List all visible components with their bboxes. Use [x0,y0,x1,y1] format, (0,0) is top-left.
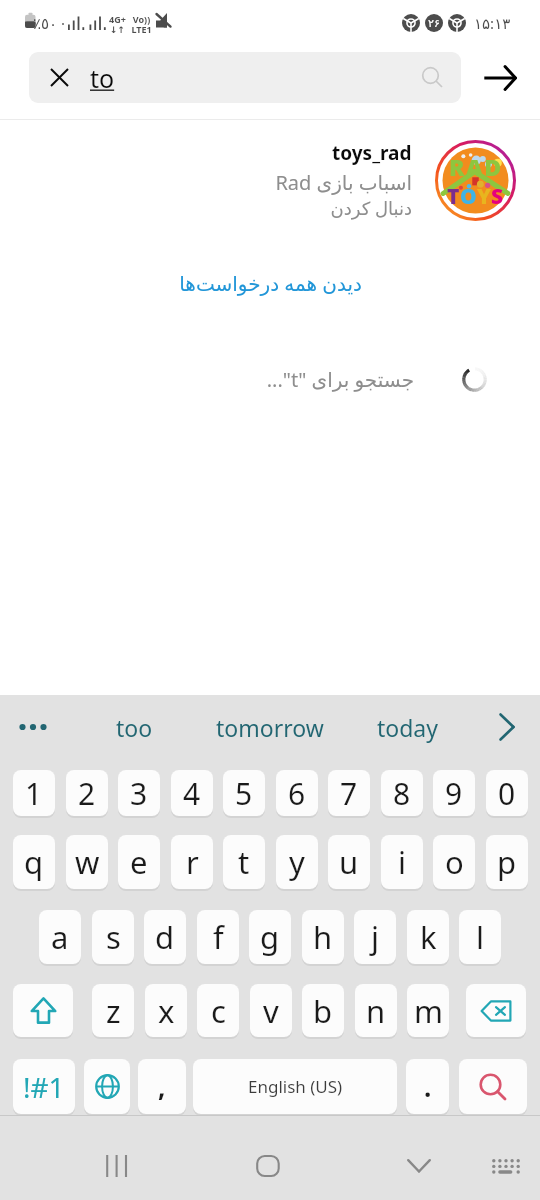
staticText: m [414,990,443,1032]
button[interactable]: Search [459,1059,527,1114]
staticText: Vo)) LTE1 [131,13,152,35]
button[interactable]: l [459,910,501,964]
staticText: 8 [393,773,411,814]
button[interactable]: q [13,835,55,889]
button[interactable]: d [144,910,186,964]
staticText: 1 [25,773,43,814]
button[interactable]: v [250,984,292,1037]
button[interactable]: p [486,835,528,889]
button[interactable]: More [484,703,530,751]
staticText: 3 [130,773,148,814]
staticText: y [289,841,305,883]
button[interactable]: o [433,835,475,889]
staticText: ۱۵:۱۳ [474,13,511,33]
staticText: RAD [449,151,503,182]
button[interactable]: a [39,910,81,964]
button[interactable]: g [249,910,291,964]
staticText: q [24,841,44,883]
button[interactable]: x [145,984,187,1037]
button[interactable]: y [276,835,318,889]
button[interactable]: too [74,703,194,751]
button[interactable]: h [302,910,344,964]
button[interactable]: u [328,835,370,889]
button[interactable]: f [197,910,239,964]
button[interactable]: e [118,835,160,889]
button[interactable]: Submit search [473,52,527,103]
staticText: w [75,841,100,883]
button[interactable]: Backspace [466,984,526,1037]
staticText: ٪٥٠ · [33,13,66,33]
staticText: 2 [78,773,96,814]
button[interactable]: toys_rad [0,138,540,222]
button[interactable]: Change language [84,1059,130,1114]
staticText: toys_rad [332,140,412,166]
button[interactable]: English (US) [193,1059,397,1114]
staticText: O [460,182,477,211]
staticText: f [213,916,224,958]
button[interactable]: k [407,910,449,964]
staticText: too [116,712,153,743]
button[interactable]: !#1 [13,1059,75,1114]
button[interactable]: 4 [171,770,213,816]
button[interactable]: 5 [223,770,265,816]
button[interactable]: 9 [433,770,475,816]
button[interactable]: j [354,910,396,964]
staticText: x [158,990,175,1032]
staticText: t [238,841,250,883]
button[interactable]: Clear [29,52,461,103]
staticText: i [398,841,406,883]
button[interactable]: 8 [381,770,423,816]
button[interactable]: 7 [328,770,370,816]
button[interactable]: Home [236,1134,300,1198]
staticText: 4 [183,773,201,814]
button[interactable]: today [347,703,467,751]
staticText: n [366,990,386,1032]
button[interactable]: tomorrow [210,703,330,751]
button[interactable]: t [223,835,265,889]
staticText: b [313,990,333,1032]
staticText: h [313,916,333,958]
staticText: 0 [498,773,516,814]
staticText: . [424,1069,432,1104]
button[interactable]: 6 [276,770,318,816]
button[interactable]: More suggestions [10,703,56,751]
staticText: e [130,841,148,883]
button[interactable]: w [66,835,108,889]
button[interactable]: دیدن همه درخواست‌ها [0,258,540,308]
button[interactable]: b [302,984,344,1037]
staticText: جستجو برای "t"... [266,366,414,393]
staticText: v [263,990,279,1032]
staticText: اسباب بازی Rad [275,169,412,196]
button[interactable]: Recents [85,1134,149,1198]
staticText: , [158,1069,166,1104]
button[interactable]: s [92,910,134,964]
button[interactable]: , [138,1059,186,1114]
button[interactable]: i [381,835,423,889]
staticText: !#1 [23,1068,65,1106]
button[interactable]: 0 [486,770,528,816]
staticText: z [106,990,121,1032]
button[interactable]: Shift [13,984,73,1037]
button[interactable]: 3 [118,770,160,816]
staticText: s [106,916,121,958]
button[interactable]: c [197,984,239,1037]
staticText: to [90,61,115,95]
button[interactable]: 1 [13,770,55,816]
staticText: o [445,841,464,883]
button[interactable]: Hide keyboard [387,1134,451,1198]
staticText: today [377,712,438,743]
button[interactable]: z [92,984,134,1037]
staticText: tomorrow [216,712,324,743]
staticText: 9 [445,773,463,814]
button[interactable]: . [406,1059,449,1114]
staticText: r [186,841,199,883]
staticText: 6 [288,773,306,814]
button[interactable]: Switch keyboard [473,1134,537,1198]
staticText: u [339,841,359,883]
button[interactable]: 2 [66,770,108,816]
staticText: T [447,182,460,211]
button[interactable]: n [355,984,397,1037]
button[interactable]: Clear [29,52,90,103]
button[interactable]: r [171,835,213,889]
button[interactable]: m [407,984,449,1037]
